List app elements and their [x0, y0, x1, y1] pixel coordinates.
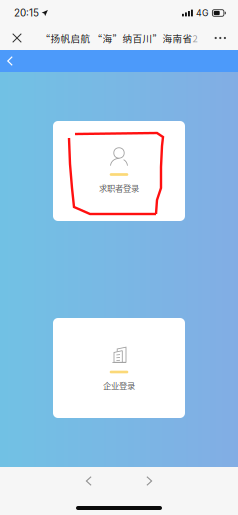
- staticText: “扬帆启航 “海”纳百川”海南省: [40, 31, 192, 45]
- staticText: 20:15: [14, 7, 39, 19]
- button[interactable]: 求职者登录: [53, 121, 185, 221]
- button[interactable]: 企业登录: [53, 318, 185, 418]
- button[interactable]: Forward: [137, 470, 161, 492]
- button[interactable]: More: [205, 26, 238, 50]
- staticText: 求职者登录: [99, 182, 139, 194]
- staticText: 企业登录: [103, 379, 135, 391]
- button[interactable]: Close: [0, 26, 30, 50]
- button[interactable]: Back: [76, 470, 101, 492]
- staticText: 4G: [196, 8, 209, 18]
- button[interactable]: Back: [0, 50, 23, 72]
- staticText: 2: [192, 31, 197, 45]
